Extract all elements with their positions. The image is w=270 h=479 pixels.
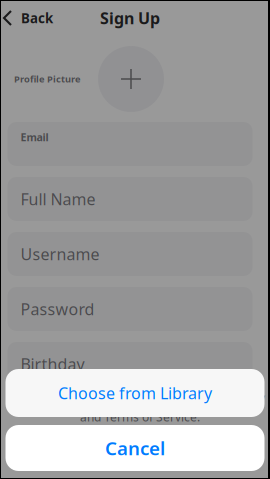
staticText: Sign Up: [100, 7, 160, 29]
staticText: Cancel: [105, 436, 165, 460]
staticText: and Terms of Service.: [80, 409, 200, 425]
staticText: Choose from Library: [58, 382, 212, 404]
button[interactable]: Password: [7, 287, 252, 331]
button[interactable]: Choose from Library: [5, 369, 264, 417]
button[interactable]: Add profile picture: [98, 46, 164, 112]
button[interactable]: Cancel: [5, 425, 264, 471]
button[interactable]: Full Name: [7, 177, 252, 221]
button[interactable]: Birthday: [7, 342, 252, 386]
staticText: Birthday: [20, 353, 84, 375]
button[interactable]: Back: [0, 0, 63, 36]
button[interactable]: Username: [7, 232, 252, 276]
staticText: By signing up, you agree to our Privacy …: [15, 390, 265, 406]
staticText: Full Name: [20, 188, 95, 210]
staticText: Back: [21, 9, 53, 27]
button[interactable]: Email: [7, 122, 252, 166]
staticText: Password: [20, 298, 94, 320]
staticText: Username: [20, 243, 99, 265]
staticText: Email: [20, 130, 48, 144]
staticText: Profile Picture: [14, 73, 81, 85]
